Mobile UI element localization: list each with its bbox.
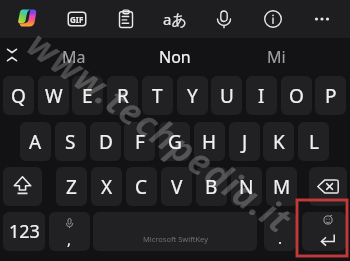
button[interactable]: G — [159, 122, 190, 161]
staticText: V — [171, 174, 183, 200]
staticText: Non — [159, 46, 191, 68]
staticText: GIF — [70, 14, 84, 25]
staticText: H — [202, 129, 217, 155]
button[interactable]: K — [263, 122, 294, 161]
button[interactable]: D — [90, 122, 121, 161]
staticText: R — [117, 83, 129, 109]
button[interactable]: aあ — [158, 2, 192, 36]
button[interactable]: Clipboard — [109, 2, 143, 36]
staticText: X — [101, 174, 113, 200]
staticText: W — [45, 83, 63, 109]
button[interactable]: Numbers — [3, 212, 45, 251]
staticText: E — [82, 83, 93, 109]
staticText: N — [239, 174, 254, 200]
staticText: aあ — [163, 9, 187, 29]
button[interactable]: Info — [256, 2, 290, 36]
staticText: S — [65, 129, 76, 155]
staticText: Microsoft SwiftKey — [143, 234, 208, 244]
button[interactable]: Ma — [26, 38, 122, 76]
button[interactable]: Shift — [3, 167, 42, 206]
button[interactable]: L — [298, 122, 329, 161]
button[interactable]: Enter — [302, 212, 346, 251]
button[interactable]: Space — [93, 212, 257, 251]
button[interactable]: F — [124, 122, 155, 161]
button[interactable]: Collapse suggestions — [0, 41, 26, 69]
staticText: , — [67, 229, 72, 249]
staticText: . — [278, 228, 283, 248]
button[interactable]: Q — [3, 76, 34, 115]
staticText: I — [258, 83, 265, 109]
button[interactable]: J — [229, 122, 260, 161]
staticText: K — [273, 129, 285, 155]
button[interactable]: X — [91, 167, 122, 206]
button[interactable]: W — [38, 76, 69, 115]
button[interactable]: Comma — [49, 212, 90, 251]
staticText: 123 — [9, 219, 40, 244]
button[interactable]: E — [72, 76, 103, 115]
staticText: Z — [66, 174, 77, 200]
staticText: Y — [187, 83, 198, 109]
staticText: Ma — [62, 46, 86, 68]
staticText: Q — [11, 83, 26, 109]
button[interactable]: I — [246, 76, 277, 115]
button[interactable]: T — [142, 76, 173, 115]
button[interactable]: Backspace — [309, 167, 347, 206]
staticText: F — [135, 129, 145, 155]
button[interactable]: P — [315, 76, 346, 115]
button[interactable]: O — [281, 76, 312, 115]
button[interactable]: Copilot — [11, 1, 45, 35]
button[interactable]: R — [107, 76, 138, 115]
staticText: T — [152, 83, 163, 109]
staticText: P — [325, 83, 337, 109]
button[interactable]: S — [55, 122, 86, 161]
staticText: U — [220, 83, 234, 109]
button[interactable]: V — [161, 167, 192, 206]
staticText: C — [135, 174, 148, 200]
button[interactable]: N — [231, 167, 262, 206]
button[interactable]: B — [196, 167, 227, 206]
staticText: A — [29, 129, 42, 155]
button[interactable]: Y — [177, 76, 208, 115]
staticText: B — [205, 174, 218, 200]
staticText: G — [168, 129, 182, 155]
button[interactable]: C — [126, 167, 157, 206]
button[interactable]: A — [20, 122, 51, 161]
staticText: O — [289, 83, 304, 109]
button[interactable]: M — [266, 167, 297, 206]
staticText: D — [99, 129, 113, 155]
button[interactable]: Non — [127, 38, 223, 76]
button[interactable]: Z — [56, 167, 87, 206]
button[interactable]: More options — [305, 2, 339, 36]
staticText: M — [273, 174, 291, 200]
button[interactable]: Voice input — [207, 2, 241, 36]
button[interactable]: U — [211, 76, 242, 115]
button[interactable]: Period — [264, 212, 296, 251]
button[interactable]: Mi — [228, 38, 324, 76]
staticText: J — [242, 129, 248, 155]
staticText: www.techpedia.it — [18, 19, 302, 244]
button[interactable]: H — [194, 122, 225, 161]
staticText: Mi — [267, 46, 286, 68]
button[interactable]: GIF — [60, 2, 94, 36]
staticText: L — [309, 129, 319, 155]
